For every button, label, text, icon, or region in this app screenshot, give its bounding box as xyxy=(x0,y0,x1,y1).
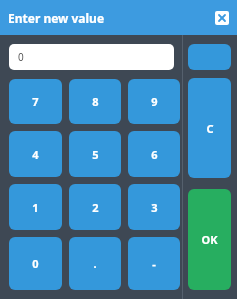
button[interactable]: . xyxy=(69,237,121,290)
staticText: . xyxy=(93,256,97,271)
button[interactable]: 4 xyxy=(9,131,62,177)
staticText: - xyxy=(152,256,156,271)
button[interactable]: 3 xyxy=(128,184,180,230)
staticText: 2 xyxy=(92,200,99,215)
staticText: 0 xyxy=(18,50,24,64)
button[interactable]: 0 xyxy=(9,44,174,70)
staticText: 3 xyxy=(151,200,158,215)
button[interactable]: 7 xyxy=(9,79,62,124)
button[interactable]: 1 xyxy=(9,184,62,230)
staticText: 1 xyxy=(32,200,39,215)
button[interactable]: 6 xyxy=(128,131,180,177)
button[interactable]: C xyxy=(188,78,231,178)
button[interactable]: 9 xyxy=(128,79,180,124)
button[interactable]: Close xyxy=(215,11,229,25)
staticText: 9 xyxy=(151,94,158,109)
staticText: 7 xyxy=(32,94,39,109)
button[interactable]: 5 xyxy=(69,131,121,177)
button[interactable]: OK xyxy=(188,189,231,290)
staticText: 4 xyxy=(32,147,39,162)
button[interactable]: 0 xyxy=(9,237,62,290)
staticText: OK xyxy=(201,232,218,247)
button[interactable]: 2 xyxy=(69,184,121,230)
button[interactable]: Backspace xyxy=(188,44,231,70)
staticText: 6 xyxy=(151,147,158,162)
staticText: 5 xyxy=(92,147,99,162)
staticText: Enter new value xyxy=(8,10,105,26)
button[interactable]: - xyxy=(128,237,180,290)
button[interactable]: 8 xyxy=(69,79,121,124)
staticText: 8 xyxy=(92,94,99,109)
staticText: 0 xyxy=(32,256,39,271)
staticText: C xyxy=(206,121,214,136)
